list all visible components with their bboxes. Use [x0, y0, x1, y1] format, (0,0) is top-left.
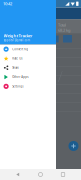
staticText: Convert Kg [12, 47, 28, 51]
button[interactable]: Convert Kg [0, 44, 56, 54]
button[interactable]: Other Apps [0, 72, 56, 82]
staticText: Share [12, 66, 19, 69]
staticText: 68.2 kg [58, 27, 70, 33]
staticText: appdev7@gmail.com [3, 38, 29, 42]
staticText: WeightTracker [3, 33, 32, 38]
staticText: Rate Us [12, 57, 22, 60]
button[interactable]: Settings [0, 82, 56, 91]
button[interactable]: Recent apps [58, 170, 67, 179]
staticText: Total [58, 22, 66, 27]
button[interactable]: Home [36, 170, 45, 179]
button[interactable]: Add entry [68, 141, 78, 151]
button[interactable]: Back [13, 170, 22, 179]
staticText: Other Apps [12, 75, 28, 79]
staticText: Settings [12, 85, 23, 88]
staticText: 10:42 [3, 1, 12, 6]
button[interactable]: Share [0, 63, 56, 72]
button[interactable]: Rate Us [0, 54, 56, 63]
